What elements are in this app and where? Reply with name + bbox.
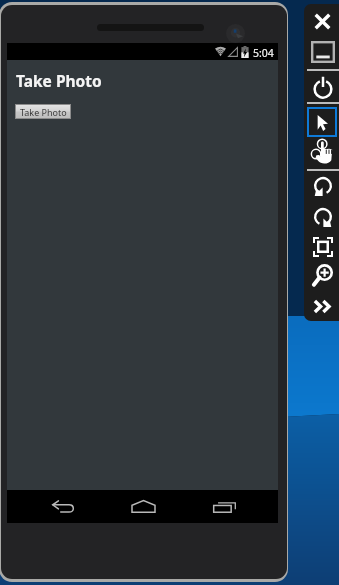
button[interactable]: Resize [306,232,339,261]
button[interactable]: Touch input [306,137,339,166]
staticText: Take Photo [20,106,67,118]
button[interactable]: Home [123,490,163,523]
button[interactable]: Back [43,490,83,523]
button[interactable]: Zoom in [306,261,339,290]
staticText: 5:04 [253,46,274,60]
button[interactable]: Rotate left [306,172,339,201]
button[interactable]: Pointer tool [307,107,337,137]
button[interactable]: Minimize [306,37,339,66]
button[interactable]: Recent apps [204,490,244,523]
button[interactable]: Rotate right [306,203,339,232]
button[interactable]: Power [306,72,339,101]
button[interactable]: More [306,292,339,321]
button[interactable]: Close [306,7,339,36]
button[interactable]: Pointer [306,108,339,137]
staticText: Take Photo [16,70,102,91]
button[interactable]: Take Photo [15,104,71,119]
